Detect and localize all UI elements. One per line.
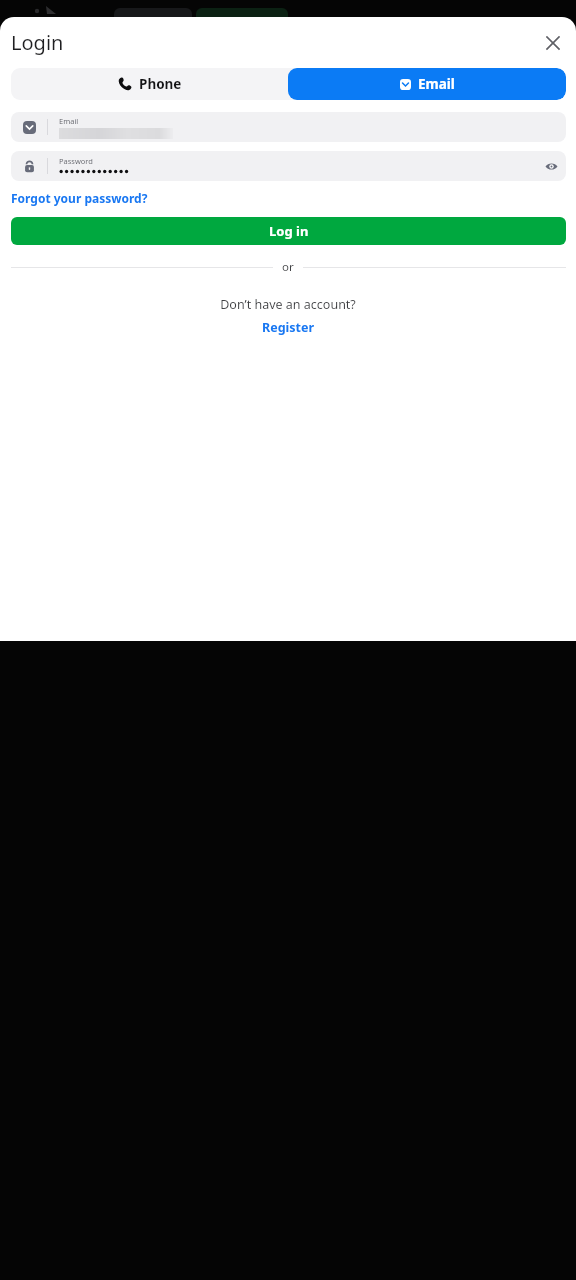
button[interactable]: Password [11,151,566,181]
staticText: Don’t have an account? [0,296,576,313]
staticText: or [282,259,294,275]
button[interactable]: Phone [11,68,288,100]
staticText: Log in [269,222,309,240]
button[interactable]: Email [288,68,566,100]
button[interactable]: Register [262,319,315,336]
button[interactable]: Close [538,28,568,58]
button[interactable]: Log in [11,217,566,245]
staticText: Register [262,319,315,336]
staticText: Phone [139,75,182,93]
staticText: Email [418,75,455,93]
staticText: Forgot your password? [11,190,148,206]
staticText: Email [59,116,79,126]
staticText: Password [59,156,93,166]
staticText: Login [11,29,64,56]
button[interactable]: Forgot your password? [11,190,148,206]
button[interactable]: Show password [538,153,564,179]
button[interactable]: Email [11,112,566,142]
